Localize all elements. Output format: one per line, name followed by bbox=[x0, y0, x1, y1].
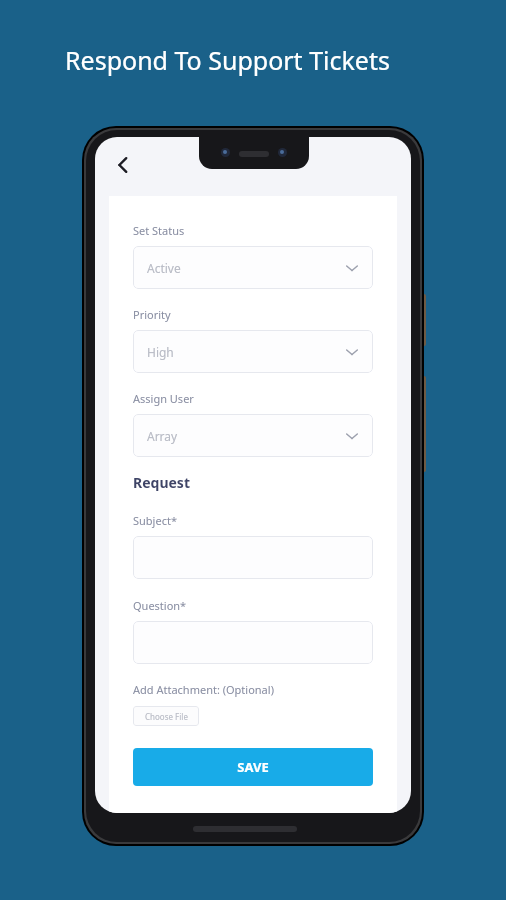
button[interactable]: High bbox=[133, 330, 373, 373]
button[interactable] bbox=[133, 536, 373, 579]
button[interactable]: Active bbox=[133, 246, 373, 289]
staticText: SAVE bbox=[237, 758, 269, 776]
button[interactable] bbox=[133, 621, 373, 664]
staticText: Respond To Support Tickets bbox=[65, 43, 390, 77]
staticText: Set Status bbox=[133, 223, 185, 238]
staticText: Question* bbox=[133, 598, 187, 613]
staticText: Array bbox=[147, 428, 178, 444]
button[interactable]: SAVE bbox=[133, 748, 373, 786]
staticText: Subject* bbox=[133, 513, 177, 528]
staticText: Choose File bbox=[145, 711, 188, 722]
button[interactable]: Array bbox=[133, 414, 373, 457]
button[interactable]: Back bbox=[101, 143, 145, 187]
staticText: Priority bbox=[133, 307, 171, 322]
staticText: Request bbox=[133, 473, 190, 492]
staticText: High bbox=[147, 344, 174, 360]
staticText: Active bbox=[147, 260, 181, 276]
button[interactable]: Choose File bbox=[133, 706, 199, 726]
staticText: Assign User bbox=[133, 391, 194, 406]
staticText: Add Attachment: (Optional) bbox=[133, 682, 274, 697]
